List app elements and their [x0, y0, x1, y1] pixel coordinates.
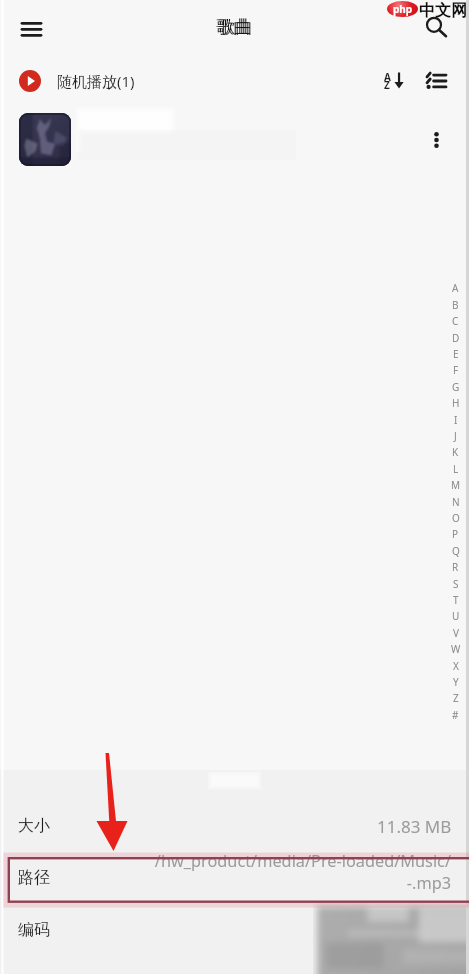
staticText: O	[452, 511, 460, 525]
staticText: S	[453, 577, 459, 591]
button[interactable]: More options	[420, 124, 452, 156]
button[interactable]: Jump to J	[446, 428, 465, 443]
button[interactable]: Jump to #	[446, 707, 465, 722]
button[interactable]: Sort	[376, 60, 416, 100]
staticText: N	[452, 495, 460, 509]
button[interactable]: Jump to P	[446, 526, 465, 541]
staticText: 中文网	[419, 1, 467, 21]
button[interactable]: Jump to Y	[446, 674, 465, 689]
button[interactable]: View as list	[416, 61, 456, 101]
staticText: B	[452, 298, 459, 312]
staticText: 歌曲	[218, 16, 253, 38]
staticText: T	[453, 593, 459, 607]
button[interactable]: Jump to Q	[446, 543, 465, 558]
button[interactable]: Jump to O	[446, 510, 465, 525]
button[interactable]: Jump to B	[446, 297, 465, 312]
button[interactable]: Jump to U	[446, 608, 465, 623]
button[interactable]: 随机播放(1)	[0, 58, 469, 104]
button[interactable]: Jump to L	[446, 461, 465, 476]
staticText: R	[452, 560, 459, 574]
staticText: -.mp3	[406, 872, 451, 894]
button[interactable]: Song item	[0, 107, 469, 173]
staticText: G	[452, 380, 460, 394]
button[interactable]: Jump to E	[446, 346, 465, 361]
staticText: 11.83 MB	[377, 815, 452, 838]
staticText: A	[384, 70, 391, 84]
button[interactable]: Navigation menu	[11, 7, 52, 48]
button[interactable]: Jump to S	[446, 576, 465, 591]
staticText: V	[453, 626, 459, 640]
staticText: 歌曲	[216, 16, 251, 38]
staticText: H	[452, 396, 460, 410]
button[interactable]: Jump to W	[446, 641, 465, 656]
staticText: 大小	[18, 816, 50, 836]
staticText: #	[452, 708, 459, 722]
button[interactable]: Jump to C	[446, 313, 465, 328]
staticText: Y	[453, 675, 459, 689]
staticText: Z	[453, 691, 459, 705]
button[interactable]: Jump to F	[446, 362, 465, 377]
staticText: W	[451, 642, 461, 656]
button[interactable]: Jump to M	[446, 477, 465, 492]
staticText: K	[452, 445, 459, 459]
staticText: D	[452, 331, 460, 345]
staticText: A	[452, 281, 459, 295]
staticText: C	[452, 314, 459, 328]
button[interactable]: Jump to V	[446, 625, 465, 640]
staticText: Q	[452, 544, 460, 558]
button[interactable]: 路径	[0, 852, 469, 904]
staticText: php	[393, 2, 413, 16]
staticText: I	[454, 413, 458, 427]
staticText: J	[454, 429, 457, 443]
button[interactable]: Jump to Z	[446, 690, 465, 705]
button[interactable]: Search	[418, 7, 460, 49]
button[interactable]: Jump to G	[446, 379, 465, 394]
staticText: P	[452, 527, 459, 541]
button[interactable]: Jump to N	[446, 494, 465, 509]
button[interactable]: 编码	[0, 904, 469, 956]
button[interactable]: Jump to K	[446, 444, 465, 459]
staticText: L	[453, 462, 459, 476]
staticText: F	[453, 363, 459, 377]
staticText: E	[453, 347, 459, 361]
button[interactable]: Jump to R	[446, 559, 465, 574]
button[interactable]: Jump to H	[446, 395, 465, 410]
button[interactable]: Jump to T	[446, 592, 465, 607]
button[interactable]: Jump to D	[446, 330, 465, 345]
staticText: 路径	[18, 868, 50, 888]
button[interactable]: Jump to I	[446, 412, 465, 427]
staticText: U	[452, 609, 460, 623]
button[interactable]: Jump to X	[446, 658, 465, 673]
staticText: M	[451, 478, 461, 492]
button[interactable]: Jump to A	[446, 280, 465, 295]
staticText: 编码	[18, 920, 50, 940]
staticText: /hw_product/media/Pre-loaded/Music/	[154, 850, 451, 872]
staticText: Z	[384, 78, 390, 92]
staticText: 随机播放(1)	[57, 71, 135, 91]
button[interactable]: 大小	[0, 800, 469, 852]
staticText: X	[453, 659, 459, 673]
